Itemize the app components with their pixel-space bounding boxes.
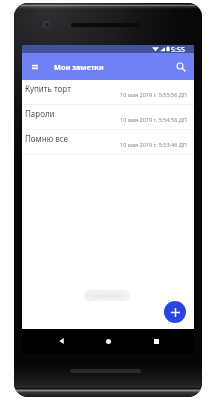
staticText: Помню все (25, 133, 68, 144)
button[interactable]: Recents (147, 332, 165, 350)
button[interactable]: Search (172, 58, 190, 76)
button[interactable]: Помню все (22, 130, 194, 155)
staticText: 5:55 (171, 45, 185, 53)
staticText: Мои заметки (54, 62, 104, 72)
button[interactable]: Купить торт (22, 80, 194, 105)
staticText: Сохранено (91, 292, 123, 300)
staticText: 10 мая 2019 г. 5:55:56 ДП (120, 91, 187, 98)
button[interactable]: Пароли (22, 105, 194, 130)
button[interactable]: Add note (164, 301, 186, 323)
staticText: 10 мая 2019 г. 5:53:46 ДП (120, 141, 187, 148)
button[interactable]: Back (52, 332, 70, 350)
staticText: Купить торт (25, 83, 71, 94)
staticText: 10 мая 2019 г. 5:54:56 ДП (120, 116, 187, 123)
staticText: Пароли (25, 108, 55, 119)
button[interactable]: Home (99, 332, 117, 350)
button[interactable]: Menu (26, 58, 44, 76)
